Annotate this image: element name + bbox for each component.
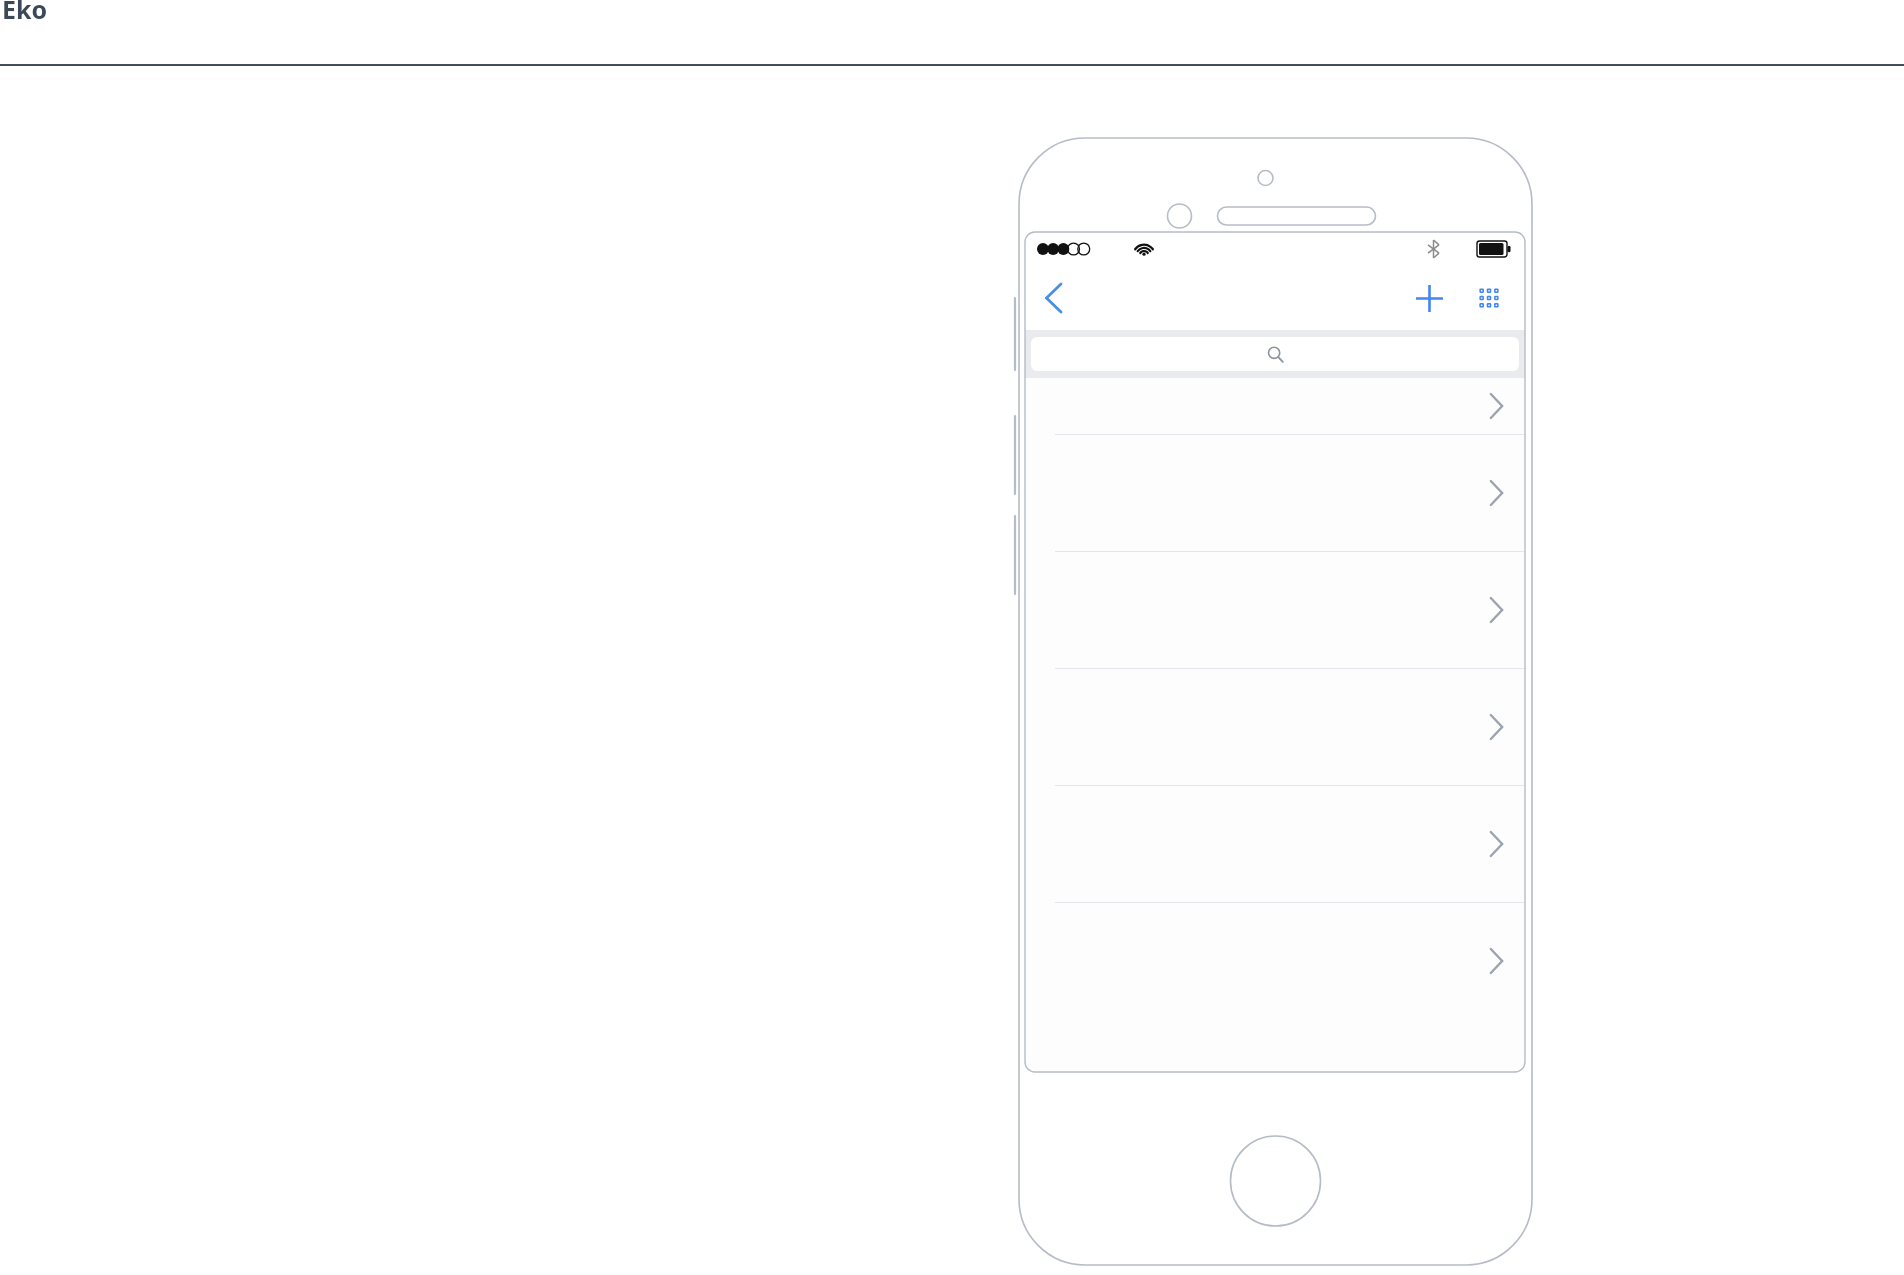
button[interactable]: [1025, 786, 1525, 902]
button[interactable]: [1025, 669, 1525, 785]
button[interactable]: [1025, 903, 1525, 1019]
button[interactable]: Grid view: [1467, 276, 1511, 320]
button[interactable]: Search: [1031, 337, 1519, 371]
button[interactable]: [1025, 435, 1525, 551]
button[interactable]: [1025, 552, 1525, 668]
button[interactable]: [1025, 378, 1525, 434]
button[interactable]: Add: [1407, 276, 1451, 320]
staticText: Eko: [2, 0, 48, 26]
button[interactable]: Back: [1031, 276, 1075, 320]
